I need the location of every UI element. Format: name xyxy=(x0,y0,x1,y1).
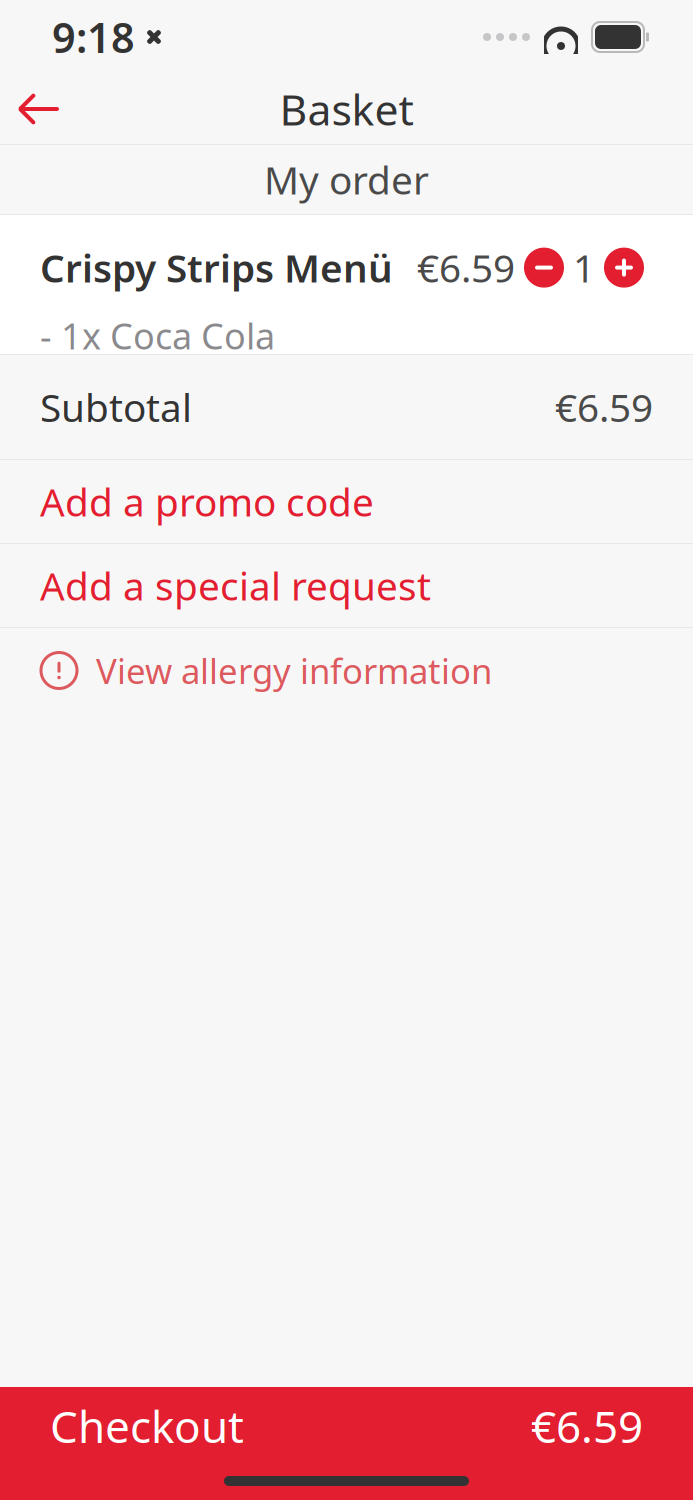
staticText: Subtotal xyxy=(40,381,192,433)
staticText: Checkout xyxy=(50,1397,244,1455)
staticText: View allergy information xyxy=(96,647,492,693)
staticText: 9:18 xyxy=(52,10,135,64)
button[interactable]: Checkout xyxy=(0,1387,693,1500)
staticText: 1 xyxy=(573,242,595,293)
button[interactable]: Back xyxy=(0,74,78,144)
staticText: €6.59 xyxy=(531,1397,643,1455)
button[interactable]: View allergy information xyxy=(0,628,693,713)
button[interactable]: Add a special request xyxy=(0,544,693,627)
staticText: €6.59 xyxy=(555,381,653,433)
staticText: - 1x Coca Cola xyxy=(40,312,275,359)
staticText: Add a special request xyxy=(40,560,431,611)
staticText: Crispy Strips Menü xyxy=(40,242,393,293)
button[interactable]: Decrease quantity xyxy=(515,240,573,296)
staticText: Basket xyxy=(279,81,413,137)
button[interactable]: Increase quantity xyxy=(595,240,653,296)
staticText: Add a promo code xyxy=(40,476,374,527)
staticText: €6.59 xyxy=(417,242,515,293)
button[interactable]: Add a promo code xyxy=(0,460,693,543)
staticText: My order xyxy=(264,154,429,205)
